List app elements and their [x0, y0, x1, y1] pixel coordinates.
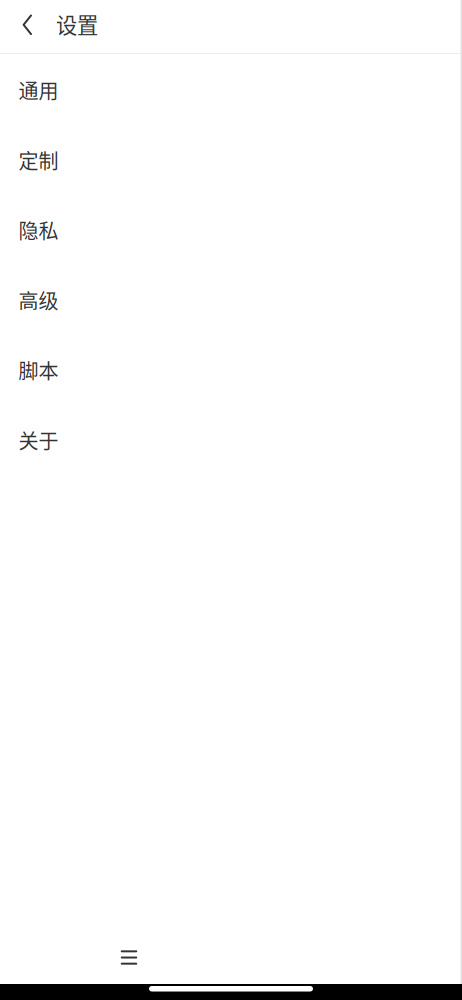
button[interactable]: 隐私	[0, 194, 462, 264]
button[interactable]: 高级	[0, 264, 462, 334]
staticText: 脚本	[18, 355, 58, 384]
staticText: 定制	[18, 145, 58, 174]
button[interactable]: 定制	[0, 124, 462, 194]
button[interactable]: 关于	[0, 404, 462, 474]
staticText: 高级	[18, 285, 58, 314]
button[interactable]: 菜单	[105, 934, 153, 982]
staticText: 设置	[56, 9, 98, 39]
staticText: 通用	[18, 75, 58, 104]
staticText: 关于	[18, 425, 58, 454]
button[interactable]: 返回	[0, 0, 56, 54]
button[interactable]: 脚本	[0, 334, 462, 404]
staticText: 隐私	[18, 215, 58, 244]
button[interactable]: 通用	[0, 54, 462, 124]
